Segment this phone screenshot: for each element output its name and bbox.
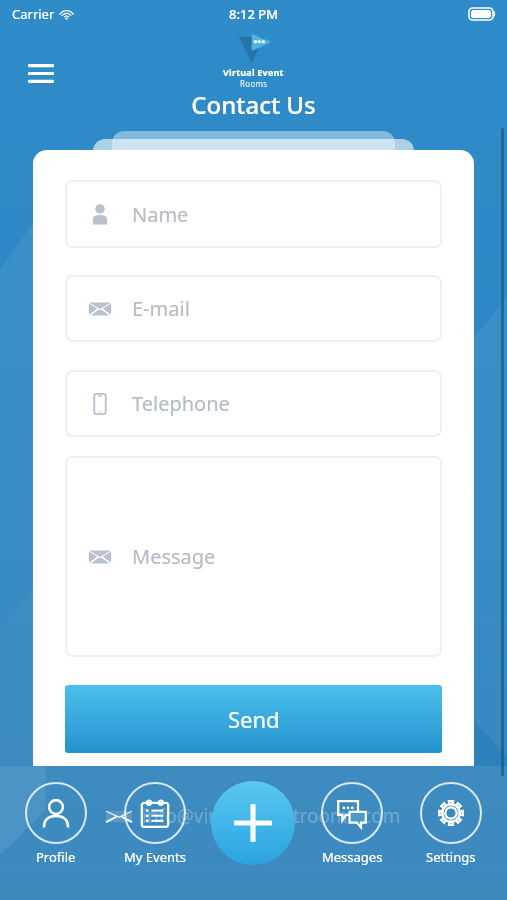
button[interactable]: My Events [112, 780, 198, 868]
button[interactable]: Menu [22, 56, 60, 90]
button[interactable]: Name [65, 180, 442, 248]
staticText: Profile [36, 848, 76, 866]
button[interactable]: Message [65, 456, 442, 657]
staticText: E-mail [132, 295, 190, 322]
staticText: Carrier [12, 5, 55, 23]
button[interactable]: Telephone [65, 370, 442, 437]
staticText: Telephone [132, 390, 230, 417]
button[interactable]: Add [211, 781, 295, 865]
staticText: Contact Us [0, 88, 507, 121]
staticText: Virtual Event [223, 66, 284, 78]
staticText: Messages [322, 848, 383, 866]
staticText: 8:12 PM [229, 5, 279, 23]
staticText: My Events [124, 848, 186, 866]
button[interactable]: E-mail [65, 275, 442, 342]
button[interactable]: Messages [309, 780, 395, 868]
staticText: Settings [426, 848, 476, 866]
staticText: Name [132, 201, 189, 228]
button[interactable]: Settings [408, 780, 494, 868]
staticText: Send [228, 704, 280, 734]
button[interactable]: Profile [13, 780, 99, 868]
button[interactable]: Send [65, 685, 442, 753]
staticText: Rooms [240, 78, 268, 89]
staticText: info@virtualeventrooms.com [142, 803, 401, 829]
staticText: Message [132, 543, 216, 570]
